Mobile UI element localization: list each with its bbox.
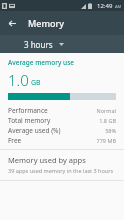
staticText: 779 MB — [96, 137, 116, 144]
staticText: 1.0 — [8, 70, 29, 90]
staticText: Normal — [96, 107, 116, 114]
staticText: 58% — [105, 127, 116, 134]
staticText: Total memory — [8, 116, 51, 125]
staticText: GB — [31, 78, 41, 88]
staticText: Memory — [28, 17, 65, 29]
button[interactable]: Memory used by apps — [0, 154, 124, 177]
button[interactable]: Navigate up — [0, 11, 24, 35]
button[interactable]: Free — [0, 135, 124, 145]
button[interactable]: Average used (%) — [0, 125, 124, 135]
staticText: 39 apps used memory in the last 3 hours — [8, 167, 114, 174]
staticText: Performance — [8, 106, 48, 115]
staticText: 1.8 GB — [99, 117, 116, 124]
staticText: Memory used by apps — [8, 155, 86, 165]
staticText: 3 hours — [24, 39, 53, 50]
button[interactable]: Performance — [0, 105, 124, 115]
button[interactable]: 3 hours — [24, 39, 64, 50]
staticText: 12:49 — [97, 2, 113, 10]
staticText: Free — [8, 136, 22, 145]
button[interactable]: Total memory — [0, 115, 124, 125]
staticText: AM — [115, 4, 122, 9]
staticText: Average memory use — [8, 58, 75, 67]
staticText: Average used (%) — [8, 126, 61, 135]
